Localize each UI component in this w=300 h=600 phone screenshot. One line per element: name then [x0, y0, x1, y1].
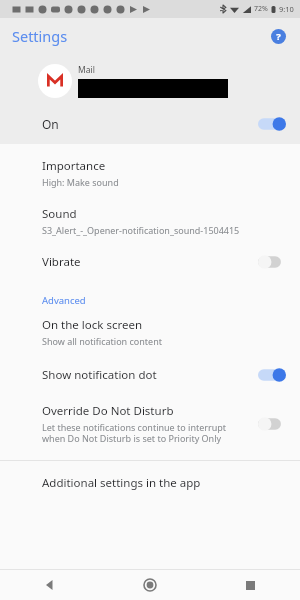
staticText: Importance: [42, 158, 106, 174]
button[interactable]: On the lock screen: [0, 313, 300, 357]
staticText: Mail: [78, 64, 95, 76]
staticText: Override Do Not Disturb: [42, 403, 174, 419]
staticText: Show all notification content: [42, 335, 162, 347]
staticText: On: [42, 116, 59, 132]
staticText: Additional settings in the app: [42, 475, 201, 491]
button[interactable]: Sound: [0, 198, 300, 244]
button[interactable]: Override Do Not Disturb: [0, 393, 300, 454]
staticText: High: Make sound: [42, 176, 119, 188]
staticText: S3_Alert_-_Opener-notification_sound-150…: [42, 224, 240, 236]
button[interactable]: Advanced: [0, 286, 300, 313]
staticText: Vibrate: [42, 254, 81, 270]
staticText: 72%: [254, 4, 268, 14]
staticText: Advanced: [42, 294, 86, 307]
button[interactable]: Show notification dot: [0, 357, 300, 393]
button[interactable]: Back: [0, 570, 100, 600]
button[interactable]: Recents: [200, 570, 300, 600]
button[interactable]: Importance: [0, 148, 300, 198]
button[interactable]: Vibrate: [0, 244, 300, 280]
staticText: ?: [276, 30, 281, 43]
button[interactable]: Additional settings in the app: [0, 461, 300, 505]
staticText: Sound: [42, 206, 77, 222]
button[interactable]: Help: [266, 24, 290, 48]
staticText: Show notification dot: [42, 367, 157, 383]
button[interactable]: Home: [100, 570, 200, 600]
staticText: 9:10: [279, 4, 294, 14]
button[interactable]: On: [0, 106, 300, 144]
staticText: Settings: [12, 26, 68, 46]
staticText: Let these notifications continue to inte…: [42, 421, 248, 444]
staticText: On the lock screen: [42, 317, 143, 333]
